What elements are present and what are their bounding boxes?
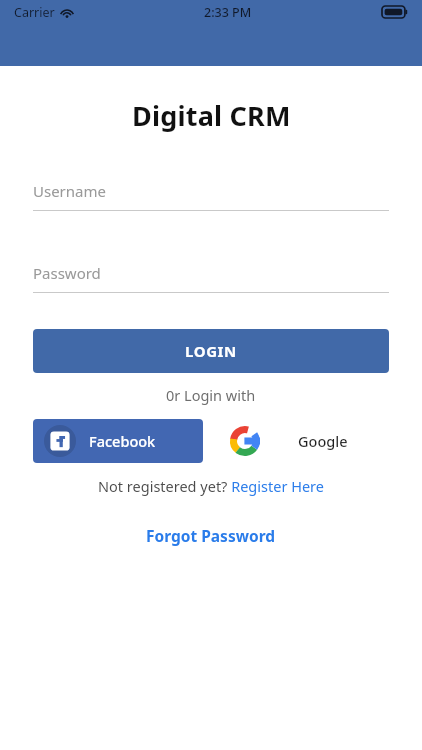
staticText: Digital CRM	[132, 97, 291, 134]
button[interactable]: Sign in with Facebook	[33, 419, 203, 463]
staticText: Forgot Password	[146, 525, 276, 546]
button[interactable]: Username	[33, 181, 389, 211]
button[interactable]: Password	[33, 263, 389, 293]
staticText: Not registered yet? Register Here	[98, 476, 324, 496]
staticText: Password	[33, 263, 101, 283]
staticText: LOGIN	[185, 341, 237, 361]
staticText: 2:33 PM	[204, 4, 252, 21]
button[interactable]: Not registered yet? Register Here	[0, 476, 422, 496]
staticText: Facebook	[89, 431, 156, 451]
staticText: Carrier	[14, 4, 55, 21]
button[interactable]: LOGIN	[33, 329, 389, 373]
other: Sign in with Facebook	[44, 425, 76, 457]
button[interactable]: Sign in with Google	[230, 419, 389, 463]
staticText: Google	[298, 431, 348, 451]
staticText: 0r Login with	[166, 385, 256, 405]
staticText: Username	[33, 181, 106, 201]
button[interactable]: Forgot Password	[0, 525, 422, 546]
other: Sign in with Google	[230, 426, 260, 456]
